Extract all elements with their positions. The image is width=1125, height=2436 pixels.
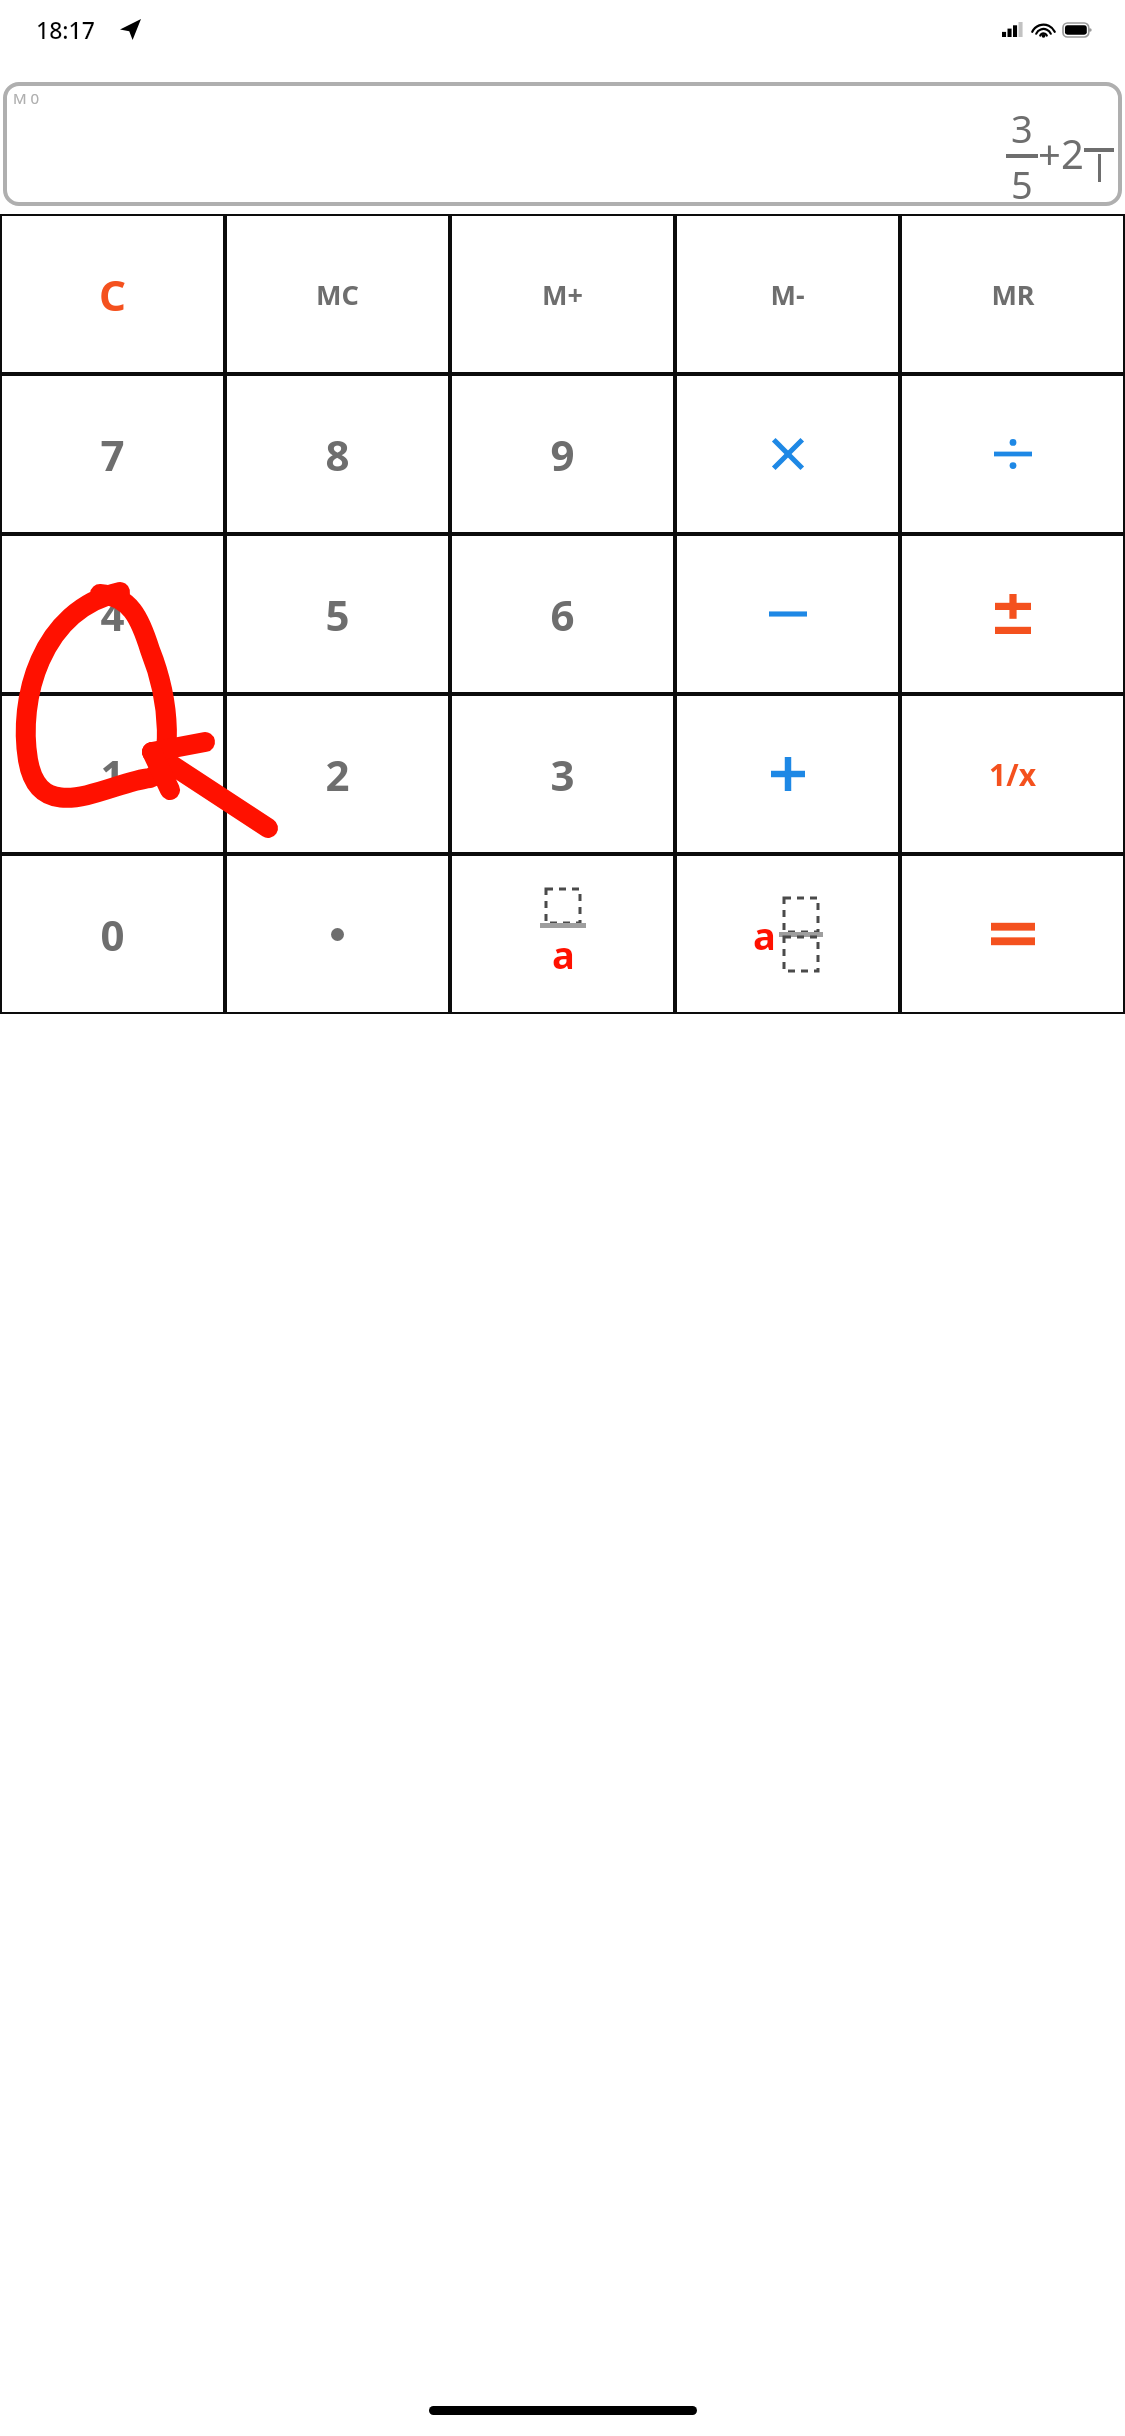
button[interactable]: Add xyxy=(677,696,898,852)
button[interactable]: Fraction xyxy=(452,856,673,1012)
staticText: 1 xyxy=(100,746,125,803)
button[interactable]: 1/x xyxy=(902,696,1123,852)
other: Fraction xyxy=(540,889,586,980)
button[interactable]: M- xyxy=(677,216,898,372)
button[interactable]: Multiply xyxy=(677,376,898,532)
button[interactable]: C xyxy=(2,216,223,372)
staticText: 2 xyxy=(1061,126,1084,180)
staticText: MR xyxy=(991,276,1035,313)
staticText: a xyxy=(552,928,575,980)
button[interactable]: 6 xyxy=(452,536,673,692)
staticText: M- xyxy=(770,276,805,313)
staticText: 2 xyxy=(325,746,350,803)
button[interactable]: Subtract xyxy=(677,536,898,692)
other: Divide xyxy=(994,437,1032,471)
staticText: 9 xyxy=(550,426,575,483)
button[interactable]: 7 xyxy=(2,376,223,532)
button[interactable]: Mixed number xyxy=(677,856,898,1012)
staticText: 5 xyxy=(325,586,350,643)
staticText: 7 xyxy=(100,426,125,483)
other: Equals xyxy=(991,920,1035,948)
staticText: 1/x xyxy=(989,754,1036,795)
staticText: 8 xyxy=(325,426,350,483)
other: Subtract xyxy=(769,606,807,622)
button[interactable]: Decimal point xyxy=(227,856,448,1012)
staticText: + xyxy=(1038,126,1061,180)
staticText: M+ xyxy=(542,276,583,313)
button[interactable]: Divide xyxy=(902,376,1123,532)
button[interactable]: MR xyxy=(902,216,1123,372)
button[interactable]: 8 xyxy=(227,376,448,532)
button[interactable]: MC xyxy=(227,216,448,372)
staticText: 5 xyxy=(1011,158,1033,204)
staticText: MC xyxy=(316,276,359,313)
button[interactable]: 5 xyxy=(227,536,448,692)
staticText: 3 xyxy=(550,746,575,803)
other: Add xyxy=(771,757,805,791)
other: Decimal point xyxy=(331,928,344,941)
button[interactable]: M+ xyxy=(452,216,673,372)
button[interactable]: 4 xyxy=(2,536,223,692)
staticText: 0 xyxy=(100,906,125,963)
other: Plus minus xyxy=(995,594,1031,634)
button[interactable]: Plus minus xyxy=(902,536,1123,692)
staticText: M 0 xyxy=(13,88,40,108)
button[interactable]: 3 xyxy=(452,696,673,852)
button[interactable]: 1 xyxy=(2,696,223,852)
staticText: 4 xyxy=(100,586,125,643)
staticText: a xyxy=(753,909,776,961)
staticText: 6 xyxy=(550,586,575,643)
other: Multiply xyxy=(773,439,803,469)
button[interactable]: 2 xyxy=(227,696,448,852)
other: Mixed number xyxy=(753,898,823,971)
staticText: 18:17 xyxy=(36,14,95,45)
button[interactable]: Equals xyxy=(902,856,1123,1012)
button[interactable]: 0 xyxy=(2,856,223,1012)
staticText: C xyxy=(99,266,126,323)
staticText: 3 xyxy=(1011,102,1033,154)
button[interactable]: 9 xyxy=(452,376,673,532)
